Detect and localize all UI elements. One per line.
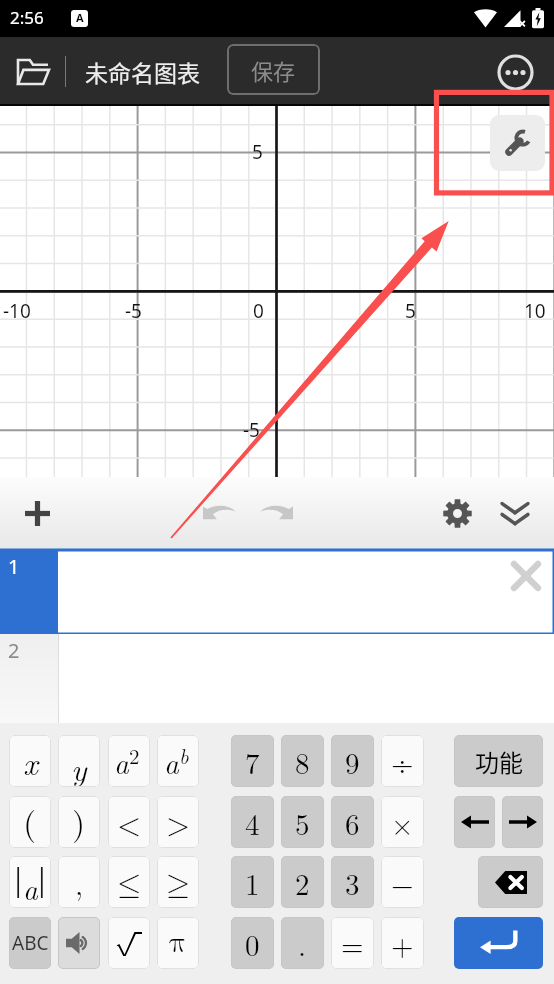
staticText: 未命名图表	[85, 55, 200, 88]
button[interactable]: x	[9, 735, 51, 787]
button[interactable]: (	[9, 796, 51, 848]
button[interactable]: Add expression	[10, 486, 65, 541]
staticText: 4	[245, 802, 260, 843]
staticText: a	[114, 741, 129, 782]
button[interactable]: y	[58, 735, 100, 787]
button[interactable]: 9	[331, 735, 374, 787]
button[interactable]: Delete expression	[58, 550, 554, 634]
button[interactable]: 6	[331, 796, 374, 848]
staticText: 0	[245, 923, 260, 964]
staticText: 2	[129, 740, 140, 770]
staticText: ×	[391, 802, 414, 843]
button[interactable]	[108, 917, 150, 969]
button[interactable]: ≤	[108, 856, 150, 908]
button[interactable]: Undo	[192, 484, 247, 539]
staticText: 9	[345, 741, 360, 782]
staticText: 3	[345, 862, 360, 903]
staticText: -5	[243, 417, 260, 443]
button[interactable]: 功能	[454, 735, 543, 787]
button[interactable]: 5	[281, 796, 324, 848]
staticText: x	[23, 739, 38, 784]
staticText: 功能	[475, 744, 523, 779]
button[interactable]: Settings	[430, 486, 485, 541]
staticText: −	[391, 862, 414, 903]
staticText: 6	[345, 802, 360, 843]
staticText: (	[23, 797, 37, 845]
button[interactable]: Redo	[249, 484, 304, 539]
staticText: <	[117, 800, 142, 844]
staticText: 7	[245, 741, 260, 782]
button[interactable]: )	[58, 796, 100, 848]
button[interactable]: 2	[281, 856, 324, 908]
staticText: 保存	[251, 54, 296, 86]
staticText: 5	[295, 802, 310, 843]
staticText: A	[76, 10, 84, 25]
button[interactable]: 1	[231, 856, 274, 908]
staticText: -5	[125, 298, 142, 324]
staticText: 5	[252, 139, 263, 165]
button[interactable]	[502, 796, 543, 848]
staticText: 1	[245, 862, 260, 903]
button[interactable]: Graph settings	[490, 115, 545, 171]
button[interactable]: 4	[231, 796, 274, 848]
staticText: )	[72, 797, 86, 845]
button[interactable]: <	[108, 796, 150, 848]
button[interactable]: a	[157, 735, 199, 787]
button[interactable]: a	[108, 735, 150, 787]
button[interactable]: ÷	[381, 735, 424, 787]
staticText: +	[391, 923, 414, 964]
staticText: ÷	[391, 741, 414, 782]
staticText: a	[23, 867, 38, 908]
button[interactable]	[454, 796, 495, 848]
button[interactable]	[478, 856, 543, 908]
staticText: ≥	[166, 869, 191, 900]
button[interactable]: .	[281, 917, 324, 969]
staticText: -10	[3, 298, 31, 324]
staticText: ≤	[117, 869, 142, 900]
button[interactable]: =	[331, 917, 374, 969]
staticText: π	[169, 928, 187, 958]
staticText: 1	[8, 553, 20, 580]
staticText: .	[298, 923, 307, 964]
button[interactable]	[58, 917, 100, 969]
button[interactable]: +	[381, 917, 424, 969]
button[interactable]: Open folder	[10, 49, 56, 95]
staticText: ,	[75, 862, 84, 903]
button[interactable]: 1	[0, 550, 58, 634]
staticText: >	[166, 800, 191, 844]
staticText: 5	[405, 298, 416, 324]
staticText: ABC	[12, 930, 49, 956]
button[interactable]: 2	[0, 634, 58, 723]
button[interactable]: 7	[231, 735, 274, 787]
staticText: 0	[253, 298, 264, 324]
staticText: b	[179, 740, 189, 770]
button[interactable]: 保存	[227, 44, 320, 95]
button[interactable]: ABC	[9, 917, 51, 969]
staticText: 8	[295, 741, 310, 782]
staticText: 2	[295, 862, 310, 903]
button[interactable]: ,	[58, 856, 100, 908]
staticText: =	[341, 923, 364, 964]
button[interactable]: Collapse keyboard	[487, 486, 542, 541]
button[interactable]: −	[381, 856, 424, 908]
staticText: 10	[524, 298, 546, 324]
button[interactable]: Delete expression	[511, 561, 541, 591]
staticText: 2	[8, 637, 20, 664]
button[interactable]: 0	[231, 917, 274, 969]
button[interactable]: ≥	[157, 856, 199, 908]
button[interactable]	[454, 917, 543, 969]
staticText: a	[164, 741, 179, 782]
button[interactable]: 3	[331, 856, 374, 908]
button[interactable]: ×	[381, 796, 424, 848]
button[interactable]: >	[157, 796, 199, 848]
button[interactable]: π	[157, 917, 199, 969]
button[interactable]: a	[9, 856, 51, 908]
button[interactable]: More options	[492, 49, 538, 95]
staticText: 2:56	[10, 6, 44, 29]
staticText: y	[71, 745, 87, 787]
button[interactable]: 8	[281, 735, 324, 787]
